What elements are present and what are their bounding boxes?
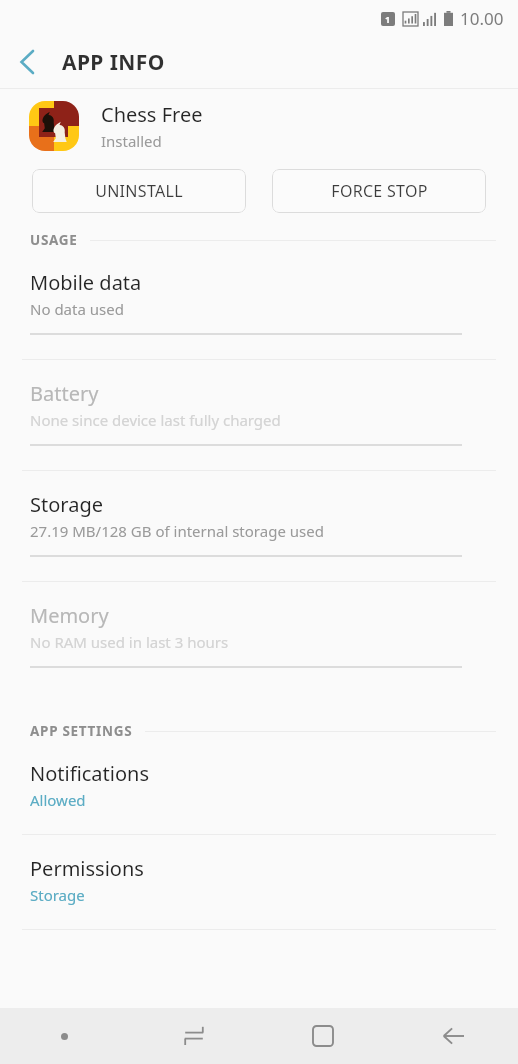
staticText: No data used bbox=[30, 299, 124, 319]
button[interactable]: Back bbox=[388, 1008, 518, 1064]
button[interactable]: Battery bbox=[0, 360, 518, 470]
button[interactable]: Mobile data bbox=[0, 249, 518, 359]
staticText: 1 bbox=[385, 13, 391, 25]
button[interactable]: Memory bbox=[0, 582, 518, 692]
button[interactable]: Notifications bbox=[0, 740, 518, 834]
button[interactable]: FORCE STOP bbox=[272, 169, 486, 213]
staticText: Storage bbox=[30, 885, 85, 905]
button[interactable]: Home bbox=[258, 1008, 388, 1064]
staticText: Allowed bbox=[30, 790, 86, 810]
button[interactable]: UNINSTALL bbox=[32, 169, 246, 213]
button[interactable]: Permissions bbox=[0, 835, 518, 929]
button[interactable]: Storage bbox=[0, 471, 518, 581]
staticText: Permissions bbox=[30, 855, 144, 882]
button[interactable]: Chess Free bbox=[0, 89, 518, 163]
staticText: FORCE STOP bbox=[331, 180, 428, 202]
staticText: Storage bbox=[30, 491, 103, 518]
button[interactable]: Menu bbox=[0, 1008, 129, 1064]
staticText: Notifications bbox=[30, 760, 149, 787]
staticText: UNINSTALL bbox=[95, 180, 183, 202]
button[interactable]: Back bbox=[0, 36, 52, 88]
staticText: Chess Free bbox=[101, 101, 203, 128]
staticText: Memory bbox=[30, 602, 109, 629]
staticText: None since device last fully charged bbox=[30, 410, 281, 430]
staticText: Installed bbox=[101, 131, 162, 151]
staticText: APP INFO bbox=[62, 48, 165, 77]
staticText: 10.00 bbox=[460, 7, 504, 30]
staticText: USAGE bbox=[30, 231, 78, 249]
staticText: Mobile data bbox=[30, 269, 142, 296]
staticText: Battery bbox=[30, 380, 99, 407]
staticText: APP SETTINGS bbox=[30, 722, 133, 740]
staticText: No RAM used in last 3 hours bbox=[30, 632, 229, 652]
button[interactable]: Recent apps bbox=[129, 1008, 258, 1064]
staticText: 27.19 MB/128 GB of internal storage used bbox=[30, 521, 324, 541]
